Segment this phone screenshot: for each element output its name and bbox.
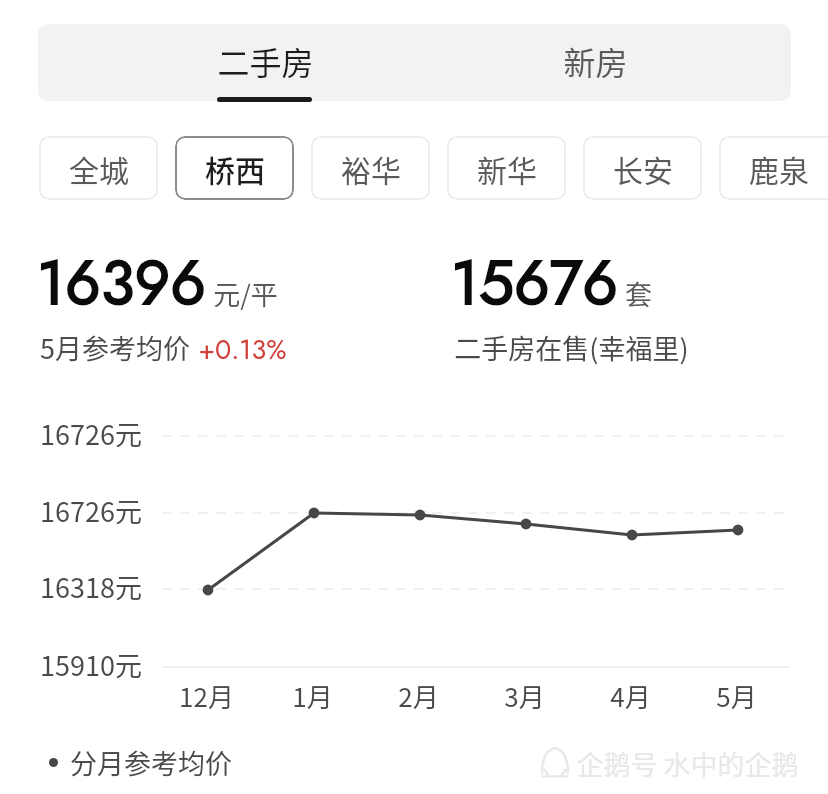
staticText: 全城 xyxy=(69,147,129,190)
staticText: 15676 xyxy=(451,238,618,328)
button[interactable]: 全城 xyxy=(39,136,158,200)
staticText: 16396 xyxy=(37,238,206,328)
staticText: 12月 xyxy=(179,677,234,715)
other: 企鹅号 xyxy=(538,746,572,778)
staticText: 元/平 xyxy=(213,274,278,313)
staticText: 16726元 xyxy=(40,491,142,530)
staticText: 二手房在售(幸福里) xyxy=(454,328,689,367)
staticText: 套 xyxy=(625,274,652,313)
button[interactable]: 鹿泉 xyxy=(719,136,828,200)
staticText: 二手房 xyxy=(217,38,314,84)
staticText: 新华 xyxy=(477,147,537,190)
staticText: 鹿泉 xyxy=(749,147,809,190)
button[interactable]: 新房 xyxy=(414,24,791,101)
staticText: 15910元 xyxy=(40,645,142,684)
button[interactable]: 新华 xyxy=(447,136,566,200)
button[interactable]: 裕华 xyxy=(311,136,430,200)
staticText: 桥西 xyxy=(205,147,265,190)
staticText: 4月 xyxy=(610,677,651,715)
staticText: 新房 xyxy=(563,38,628,84)
staticText: 长安 xyxy=(613,147,673,190)
staticText: 5月 xyxy=(716,677,757,715)
staticText: 3月 xyxy=(504,677,545,715)
staticText: 裕华 xyxy=(341,147,401,190)
staticText: 分月参考均价 xyxy=(70,743,232,782)
staticText: 2月 xyxy=(398,677,439,715)
button[interactable]: 分月参考均价 xyxy=(49,743,232,782)
button[interactable]: 桥西 xyxy=(175,136,294,200)
staticText: 16726元 xyxy=(40,414,142,453)
button[interactable]: 二手房 xyxy=(38,24,414,101)
staticText: 企鹅号 水中的企鹅 xyxy=(576,744,799,783)
button[interactable]: 长安 xyxy=(583,136,702,200)
staticText: +0.13% xyxy=(198,330,287,369)
staticText: 16318元 xyxy=(40,567,142,606)
staticText: 5月参考均价 xyxy=(40,328,190,367)
staticText: 1月 xyxy=(292,677,333,715)
